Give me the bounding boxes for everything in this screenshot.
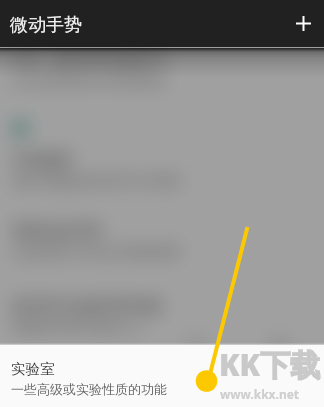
staticText: 一些高级或实验性质的功能 <box>11 381 167 397</box>
button[interactable]: Add <box>283 0 324 47</box>
staticText: 微动手势功能开关 <box>54 50 166 68</box>
staticText: 开启 <box>12 50 40 68</box>
button[interactable]: 实验室 <box>0 345 324 407</box>
staticText: 关闭 <box>268 335 290 345</box>
staticText: 微动手势 <box>10 14 82 37</box>
staticText: 手势侧滑 <box>12 151 72 170</box>
staticText: 实验室 <box>11 360 55 378</box>
staticText: 在任意界面使用手势快捷操作 <box>12 72 168 87</box>
staticText: KK下载 <box>219 344 321 385</box>
staticText: www.kkx.net <box>220 386 300 402</box>
staticText: 开启 <box>186 335 208 345</box>
